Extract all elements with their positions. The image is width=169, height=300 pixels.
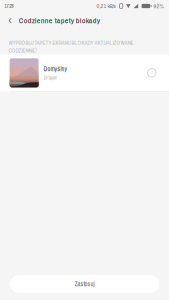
staticText: 0,21 kB/s [96, 2, 115, 10]
staticText: Codzienne tapety blokady [19, 15, 100, 26]
button[interactable]: Domyślny [0, 55, 169, 92]
staticText: 92% [153, 2, 163, 10]
staticText: 10 tapet [44, 75, 57, 81]
button[interactable]: Zastosuj [10, 275, 159, 293]
staticText: CODZIENNIE! [8, 47, 36, 54]
staticText: Zastosuj [74, 280, 94, 288]
staticText: Domyślny [44, 65, 68, 73]
staticText: WYPRÓBUJ TAPETY EKRANU BLOKADY AKTUALIZO… [8, 39, 133, 46]
staticText: 17:28 [4, 3, 13, 9]
button[interactable]: Back [0, 12, 19, 29]
